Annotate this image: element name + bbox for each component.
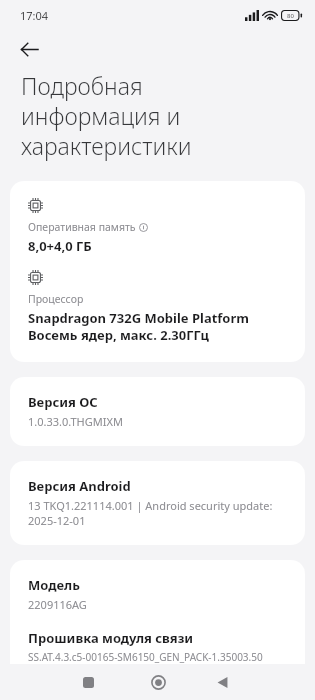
staticText: 8,0+4,0 ГБ <box>28 237 92 255</box>
staticText: Snapdragon 732G Mobile Platform Восемь я… <box>28 309 249 344</box>
button[interactable]: Recent apps <box>71 665 105 699</box>
button[interactable]: Оперативная память <box>10 181 305 362</box>
button[interactable]: Модель <box>10 560 305 684</box>
staticText: 13 TKQ1.221114.001 | Android security up… <box>28 498 273 528</box>
button[interactable]: Back <box>205 665 239 699</box>
staticText: Подробная информация и характеристики <box>21 70 192 161</box>
staticText: Версия Android <box>28 477 131 495</box>
button[interactable]: Home <box>141 665 175 699</box>
staticText: 80 <box>287 12 294 20</box>
button[interactable]: Back <box>11 31 47 67</box>
staticText: Версия ОС <box>28 393 98 411</box>
staticText: Оперативная память <box>28 220 136 234</box>
button[interactable]: Версия ОС <box>10 377 305 446</box>
staticText: 17:04 <box>20 8 49 23</box>
staticText: 2209116AG <box>28 597 87 612</box>
staticText: Модель <box>28 576 80 594</box>
staticText: SS.AT.4.3.c5-00165-SM6150_GEN_PACK-1.350… <box>28 650 263 664</box>
staticText: 1.0.33.0.THGMIXM <box>28 414 123 429</box>
staticText: Процессор <box>28 292 84 306</box>
staticText: Прошивка модуля связи <box>28 629 194 647</box>
button[interactable]: Версия Android <box>10 461 305 545</box>
